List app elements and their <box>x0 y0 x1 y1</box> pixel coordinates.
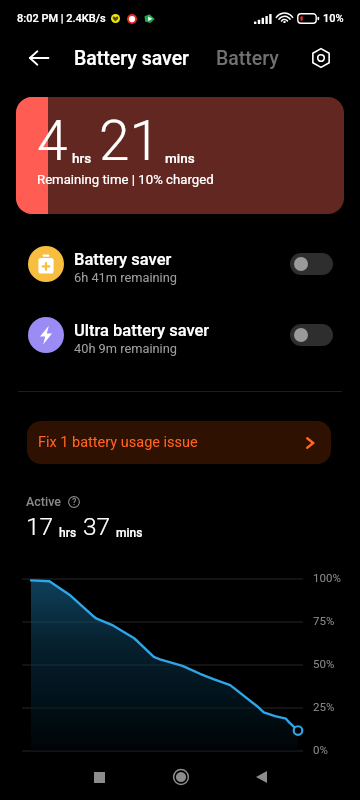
button[interactable]: Battery saver toggle <box>290 253 333 275</box>
staticText: 4 <box>37 109 68 173</box>
other: Info <box>68 496 80 508</box>
button[interactable]: 4 <box>16 97 344 214</box>
staticText: 10% <box>323 12 344 25</box>
button[interactable]: Ultra battery saver <box>0 305 360 365</box>
staticText: mins <box>165 150 195 166</box>
button[interactable]: Home <box>140 754 221 800</box>
staticText: 8:02 PM | 2.4KB/s <box>17 12 106 25</box>
staticText: mins <box>116 526 143 540</box>
button[interactable]: Back <box>21 40 57 76</box>
button[interactable]: Battery <box>216 47 279 70</box>
button[interactable]: Settings <box>305 42 337 74</box>
staticText: Battery <box>216 47 279 70</box>
staticText: 17 <box>26 512 54 541</box>
staticText: Ultra battery saver <box>74 321 210 340</box>
button[interactable]: Ultra battery saver toggle <box>290 324 333 346</box>
staticText: 100% <box>313 571 341 584</box>
staticText: 40h 9m remaining <box>74 341 177 356</box>
staticText: 37 <box>83 512 111 541</box>
staticText: ? <box>72 497 77 508</box>
staticText: 0% <box>313 743 328 756</box>
button[interactable]: Battery saver <box>74 47 190 70</box>
staticText: 50% <box>313 657 335 670</box>
staticText: Remaining time | 10% charged <box>37 172 214 187</box>
staticText: 75% <box>313 614 335 627</box>
staticText: hrs <box>59 526 77 540</box>
staticText: Fix 1 battery usage issue <box>38 434 306 451</box>
button[interactable]: Fix 1 battery usage issue <box>27 421 331 464</box>
staticText: Battery saver <box>74 47 190 70</box>
button[interactable]: Back <box>221 754 302 800</box>
button[interactable]: Recents <box>59 754 140 800</box>
button[interactable]: Battery saver <box>0 234 360 294</box>
staticText: hrs <box>72 150 92 166</box>
staticText: Battery saver <box>74 250 172 269</box>
staticText: 25% <box>313 700 335 713</box>
staticText: 6h 41m remaining <box>74 270 177 285</box>
staticText: Active <box>26 494 61 509</box>
staticText: 21 <box>99 109 161 173</box>
